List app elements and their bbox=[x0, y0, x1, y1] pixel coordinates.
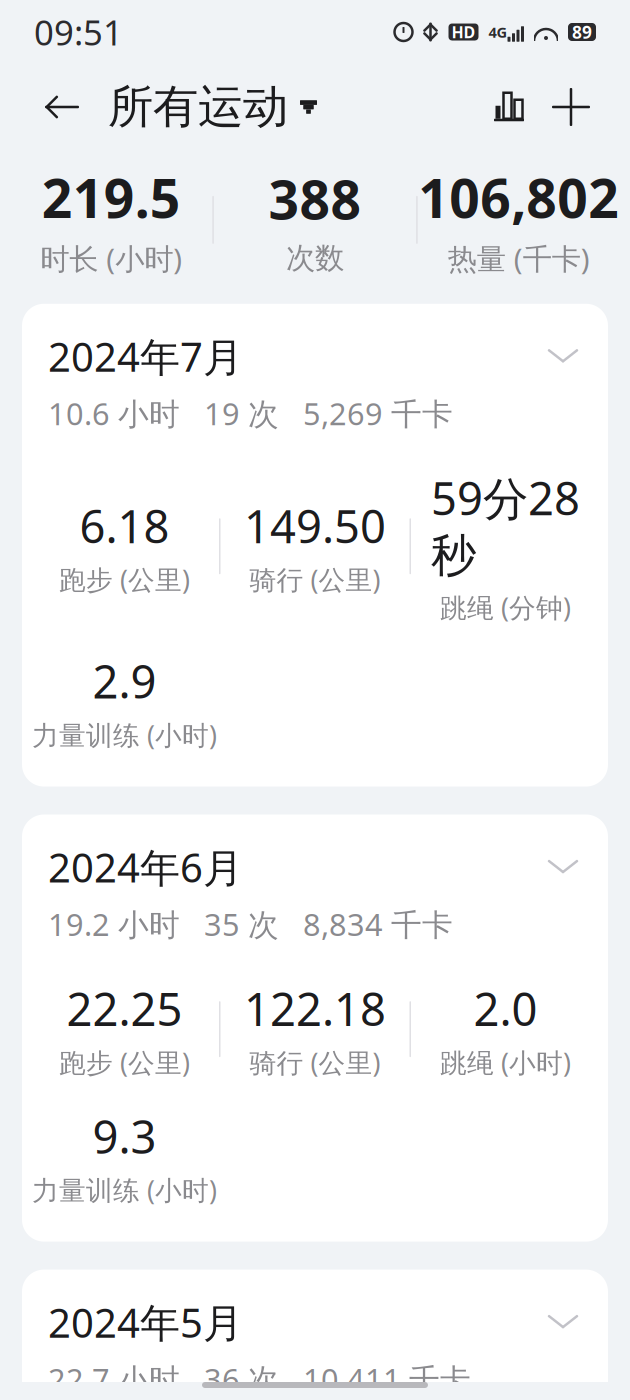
staticText: 热量 (千卡) bbox=[448, 239, 590, 278]
staticText: 122.18 bbox=[244, 978, 386, 1039]
staticText: 149.50 bbox=[244, 495, 386, 556]
staticText: 力量训练 (小时) bbox=[32, 717, 217, 752]
staticText: 2024年6月 bbox=[48, 840, 243, 894]
staticText: 22.7 小时 36 次 10,411 千卡 bbox=[48, 1359, 471, 1399]
button[interactable]: 所有运动 bbox=[96, 71, 329, 143]
staticText: 59分28秒 bbox=[431, 468, 580, 583]
staticText: 2.9 bbox=[92, 651, 156, 711]
staticText: 跳绳 (分钟) bbox=[440, 589, 571, 625]
staticText: 10.6 小时 19 次 5,269 千卡 bbox=[48, 393, 453, 434]
staticText: 2024年7月 bbox=[48, 330, 243, 383]
staticText: 219.5 bbox=[42, 162, 181, 233]
button[interactable]: Statistics bbox=[478, 82, 540, 132]
button[interactable]: Add workout bbox=[540, 82, 602, 132]
staticText: 骑行 (公里) bbox=[249, 562, 380, 597]
staticText: 19.2 小时 35 次 8,834 千卡 bbox=[48, 904, 453, 944]
staticText: 388 bbox=[268, 163, 361, 234]
staticText: 22.25 bbox=[66, 978, 182, 1039]
button[interactable]: 2024年6月 bbox=[22, 814, 608, 1242]
staticText: 2024年5月 bbox=[48, 1296, 243, 1349]
staticText: 89 bbox=[572, 20, 592, 43]
staticText: 6.18 bbox=[79, 495, 169, 556]
staticText: 骑行 (公里) bbox=[249, 1045, 380, 1080]
staticText: 跳绳 (小时) bbox=[440, 1045, 571, 1080]
staticText: 时长 (小时) bbox=[40, 239, 182, 278]
staticText: 9.3 bbox=[92, 1106, 156, 1166]
button[interactable]: 2024年7月 bbox=[22, 304, 608, 787]
staticText: 次数 bbox=[286, 240, 344, 276]
button[interactable]: 2024年5月 bbox=[22, 1270, 608, 1400]
staticText: 09:51 bbox=[34, 9, 123, 55]
staticText: 所有运动 bbox=[108, 79, 288, 135]
staticText: 跑步 (公里) bbox=[59, 1045, 190, 1080]
staticText: 4G bbox=[488, 22, 507, 42]
staticText: 2.0 bbox=[473, 978, 537, 1039]
staticText: 力量训练 (小时) bbox=[32, 1172, 217, 1208]
staticText: HD bbox=[451, 21, 475, 43]
button[interactable]: Back bbox=[28, 79, 96, 135]
staticText: 跑步 (公里) bbox=[59, 562, 190, 597]
staticText: 106,802 bbox=[418, 162, 619, 233]
